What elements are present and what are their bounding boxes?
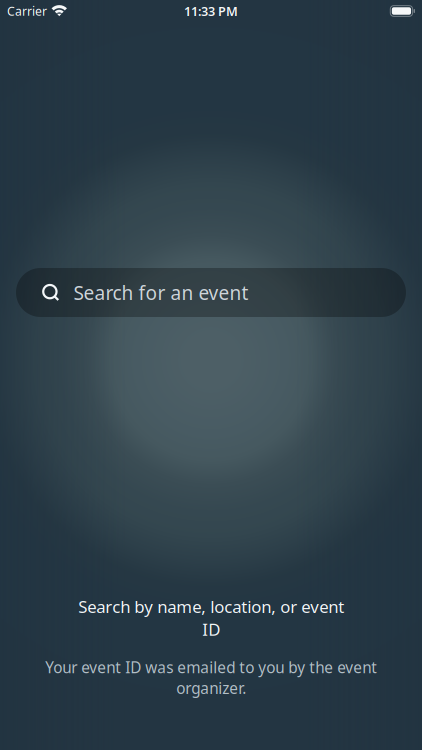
staticText: Your event ID was emailed to you by the … (45, 657, 377, 699)
staticText: Search for an event (73, 279, 248, 305)
staticText: Carrier (7, 3, 47, 19)
staticText: 11:33 PM (184, 2, 238, 20)
button[interactable]: Search for an event (16, 268, 406, 317)
staticText: Search by name, location, or event ID (78, 595, 344, 641)
